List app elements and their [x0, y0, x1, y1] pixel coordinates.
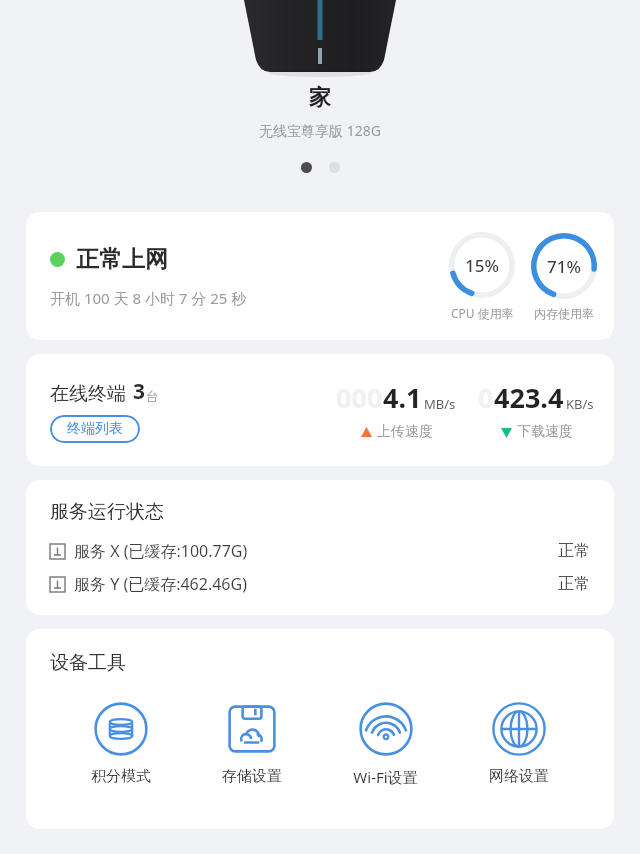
staticText: 内存使用率 [534, 306, 594, 321]
staticText: 设备工具 [50, 651, 126, 675]
staticText: 正常上网 [76, 245, 168, 274]
staticText: 15% [465, 254, 499, 277]
staticText: 服务运行状态 [50, 500, 164, 524]
staticText: 服务 Y (已缓存:462.46G) [74, 573, 247, 595]
staticText: 开机 100 天 8 小时 7 分 25 秒 [50, 288, 247, 308]
button[interactable]: 网络设置 [475, 697, 563, 790]
staticText: 家 [309, 84, 331, 112]
staticText: 上传速度 [377, 423, 433, 441]
staticText: 终端列表 [67, 420, 123, 438]
staticText: 积分模式 [91, 767, 151, 786]
staticText: 下载速度 [517, 423, 573, 441]
staticText: 0 [478, 379, 494, 416]
button[interactable]: 存储设置 [208, 697, 296, 790]
button[interactable]: 设备工具 [26, 629, 614, 829]
staticText: 在线终端 [50, 382, 126, 406]
button[interactable]: 服务运行状态 [26, 480, 614, 615]
staticText: CPU 使用率 [451, 305, 514, 321]
button[interactable]: 终端列表 [50, 415, 140, 443]
staticText: 台 [146, 388, 159, 404]
staticText: 正常 [558, 541, 590, 561]
staticText: 423.4 [494, 379, 564, 416]
staticText: MB/s [424, 395, 456, 413]
staticText: 无线宝尊享版 128G [259, 121, 381, 140]
button[interactable]: 服务 Y (已缓存:462.46G) [50, 573, 590, 595]
button[interactable]: Wi-Fi设置 [339, 697, 432, 791]
staticText: 4.1 [383, 379, 422, 416]
staticText: Wi-Fi设置 [353, 767, 418, 787]
staticText: 网络设置 [489, 767, 549, 786]
button[interactable]: 积分模式 [77, 697, 165, 790]
staticText: 正常 [558, 574, 590, 594]
staticText: 服务 X (已缓存:100.77G) [74, 540, 248, 562]
staticText: 3 [133, 377, 146, 406]
staticText: 存储设置 [222, 767, 282, 786]
button[interactable]: 在线终端 [26, 354, 614, 466]
staticText: 71% [547, 255, 581, 278]
staticText: KB/s [566, 395, 594, 413]
button[interactable]: 正常上网 [26, 212, 614, 340]
button[interactable]: 服务 X (已缓存:100.77G) [50, 540, 590, 562]
staticText: 000 [336, 379, 383, 416]
